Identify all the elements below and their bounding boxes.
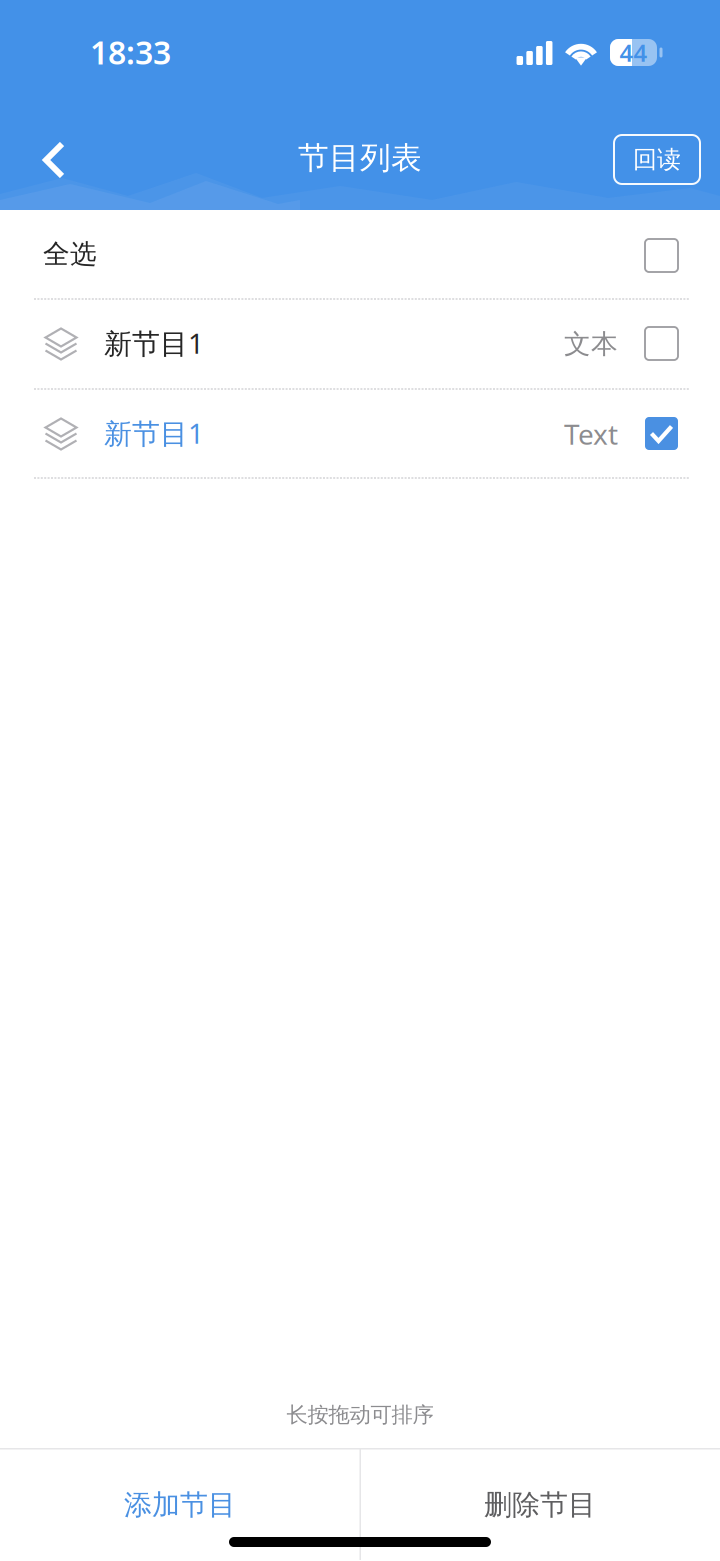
button[interactable]: 新节目1 (0, 390, 720, 477)
staticText: 节目列表 (298, 139, 422, 177)
staticText: 新节目1 (104, 414, 204, 452)
button[interactable]: 删除节目 (360, 1449, 720, 1560)
staticText: 文本 (564, 328, 618, 360)
staticText: 44 (619, 37, 647, 68)
staticText: 18:33 (90, 31, 171, 73)
staticText: 全选 (43, 238, 97, 270)
staticText: 删除节目 (484, 1488, 596, 1522)
staticText: 长按拖动可排序 (286, 1402, 433, 1428)
button[interactable]: 新节目1 (0, 300, 720, 388)
button[interactable]: 回读 (614, 135, 700, 184)
button[interactable]: 添加节目 (0, 1449, 360, 1560)
staticText: 新节目1 (104, 324, 204, 362)
staticText: 回读 (633, 145, 681, 174)
staticText: 添加节目 (124, 1488, 236, 1522)
button[interactable]: 全选 (0, 210, 720, 298)
staticText: Text (564, 415, 618, 453)
button[interactable]: Back (30, 127, 96, 193)
